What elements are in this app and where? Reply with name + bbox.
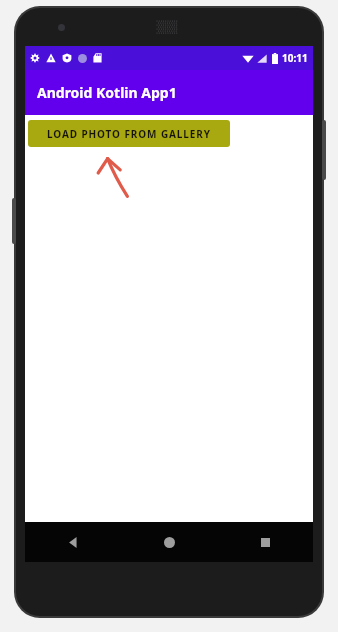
staticText: LOAD PHOTO FROM GALLERY — [47, 127, 211, 141]
button[interactable]: LOAD PHOTO FROM GALLERY — [28, 120, 230, 147]
button[interactable]: Home — [121, 522, 217, 562]
button[interactable]: Recent apps — [217, 522, 313, 562]
staticText: 10:11 — [282, 51, 308, 65]
staticText: Android Kotlin App1 — [37, 83, 177, 102]
button[interactable]: Back — [25, 522, 121, 562]
